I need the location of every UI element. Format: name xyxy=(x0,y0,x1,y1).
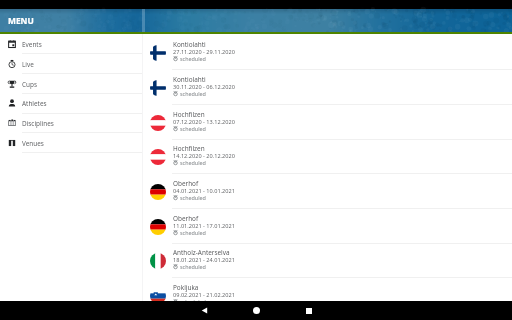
staticText: 07.12.2020 - 13.12.2020 xyxy=(173,118,235,126)
staticText: Events xyxy=(22,40,42,49)
staticText: Antholz-Anterselva xyxy=(173,248,230,257)
staticText: Athletes xyxy=(22,99,47,108)
staticText: scheduled xyxy=(180,229,206,236)
staticText: scheduled xyxy=(180,298,206,305)
staticText: Pokljuka xyxy=(173,283,199,292)
staticText: scheduled xyxy=(180,90,206,97)
staticText: 09.02.2021 - 21.02.2021 xyxy=(173,291,235,299)
staticText: MENU xyxy=(8,15,34,26)
staticText: Kontiolahti xyxy=(173,40,206,49)
staticText: Hochfilzen xyxy=(173,110,205,119)
button[interactable]: Oberhof xyxy=(143,174,512,209)
staticText: 14.12.2020 - 20.12.2020 xyxy=(173,152,235,160)
button[interactable]: Disciplines xyxy=(0,113,142,133)
staticText: scheduled xyxy=(180,194,206,201)
staticText: scheduled xyxy=(180,263,206,270)
button[interactable]: Oberhof xyxy=(143,209,512,244)
button[interactable]: Kontiolahti xyxy=(143,35,512,70)
staticText: scheduled xyxy=(180,55,206,62)
button[interactable]: Kontiolahti xyxy=(143,70,512,105)
staticText: Disciplines xyxy=(22,119,54,128)
button[interactable]: Recent apps xyxy=(299,301,318,320)
button[interactable]: Antholz-Anterselva xyxy=(143,243,512,278)
button[interactable]: Athletes xyxy=(0,93,142,113)
staticText: 11.01.2021 - 17.01.2021 xyxy=(173,222,235,230)
staticText: 18.01.2021 - 24.01.2021 xyxy=(173,256,235,264)
staticText: Cups xyxy=(22,80,37,89)
staticText: Oberhof xyxy=(173,179,199,188)
staticText: Kontiolahti xyxy=(173,75,206,84)
staticText: 04.01.2021 - 10.01.2021 xyxy=(173,187,235,195)
staticText: Hochfilzen xyxy=(173,144,205,153)
button[interactable]: Hochfilzen xyxy=(143,105,512,140)
staticText: Oberhof xyxy=(173,214,199,223)
button[interactable]: Back xyxy=(195,301,214,320)
staticText: 30.11.2020 - 06.12.2020 xyxy=(173,83,235,91)
staticText: 27.11.2020 - 29.11.2020 xyxy=(173,48,235,56)
staticText: Live xyxy=(22,60,34,69)
button[interactable]: Home xyxy=(247,301,266,320)
button[interactable]: Venues xyxy=(0,133,142,153)
button[interactable]: Live xyxy=(0,54,142,74)
button[interactable]: Cups xyxy=(0,74,142,94)
staticText: scheduled xyxy=(180,159,206,166)
button[interactable]: Pokljuka xyxy=(143,278,512,313)
button[interactable]: Hochfilzen xyxy=(143,139,512,174)
button[interactable]: Events xyxy=(0,34,142,54)
staticText: Venues xyxy=(22,139,44,148)
staticText: scheduled xyxy=(180,125,206,132)
